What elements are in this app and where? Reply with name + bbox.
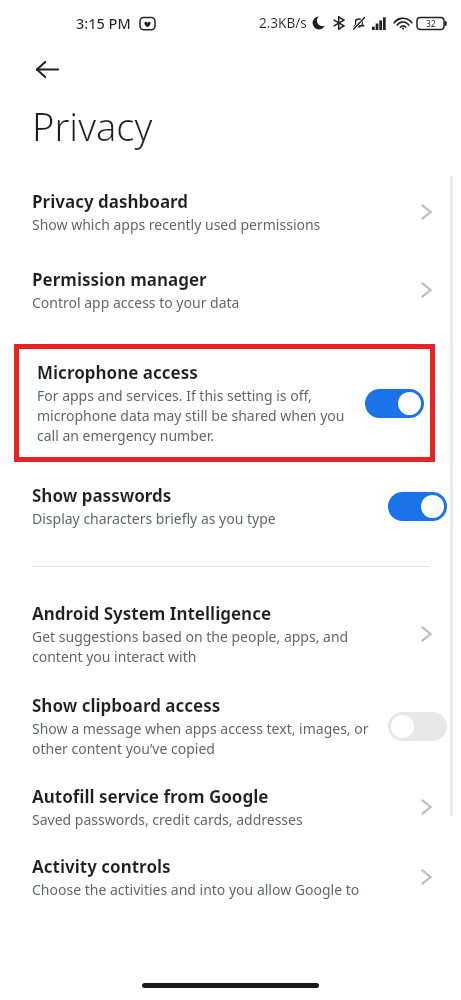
staticText: Control app access to your data: [32, 293, 240, 312]
button[interactable]: Toggle on: [365, 389, 424, 418]
staticText: Choose the activities and into you allow…: [32, 880, 360, 899]
staticText: Saved passwords, credit cards, addresses: [32, 810, 303, 829]
button[interactable]: Open Activity controls: [405, 856, 447, 898]
staticText: 2.3KB/s: [259, 14, 307, 32]
staticText: For apps and services. If this setting i…: [37, 386, 359, 445]
staticText: 32: [426, 18, 436, 30]
button[interactable]: Activity controls: [0, 855, 461, 899]
button[interactable]: Open Autofill service from Google: [405, 786, 447, 828]
button[interactable]: Privacy dashboard: [0, 190, 461, 244]
button[interactable]: Open Privacy dashboard: [405, 191, 447, 233]
staticText: Permission manager: [32, 268, 207, 291]
staticText: Display characters briefly as you type: [32, 509, 276, 528]
button[interactable]: Show clipboard access: [0, 694, 461, 758]
button[interactable]: Open Android System Intelligence: [405, 613, 447, 655]
button[interactable]: Android System Intelligence: [0, 602, 461, 666]
staticText: Android System Intelligence: [32, 602, 272, 625]
button[interactable]: Toggle off: [388, 712, 447, 741]
button[interactable]: Toggle on: [388, 492, 447, 521]
staticText: Show passwords: [32, 484, 172, 507]
staticText: Privacy dashboard: [32, 190, 189, 213]
button[interactable]: Back: [24, 46, 70, 92]
button[interactable]: Show passwords: [0, 484, 461, 528]
staticText: Show a message when apps access text, im…: [32, 719, 376, 758]
button[interactable]: Permission manager: [0, 268, 461, 322]
staticText: Privacy: [32, 100, 153, 152]
staticText: 3:15 PM: [76, 13, 131, 33]
staticText: Microphone access: [37, 361, 198, 384]
button[interactable]: Open Permission manager: [405, 269, 447, 311]
button[interactable]: Autofill service from Google: [0, 785, 461, 829]
staticText: Activity controls: [32, 855, 171, 878]
staticText: Show clipboard access: [32, 694, 221, 717]
staticText: Show which apps recently used permission…: [32, 215, 321, 234]
staticText: Get suggestions based on the people, app…: [32, 627, 373, 666]
button[interactable]: Microphone access: [19, 349, 430, 457]
staticText: Autofill service from Google: [32, 785, 269, 808]
